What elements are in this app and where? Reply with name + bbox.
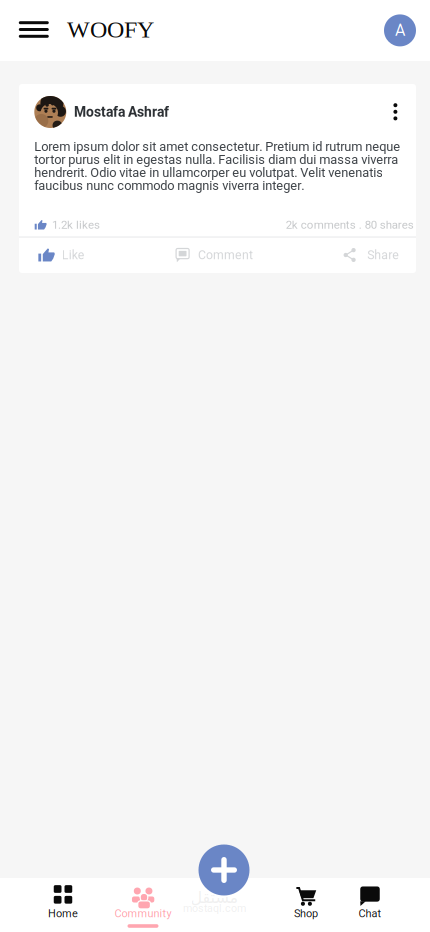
button[interactable]: Community [106,878,180,932]
button[interactable]: Chat [333,878,407,932]
staticText: mostaql.com [183,902,246,914]
staticText: 1.2k likes [52,218,100,231]
staticText: Share [367,248,399,262]
staticText: Chat [358,907,381,920]
button[interactable]: More options [381,96,409,128]
staticText: مستقل [190,888,238,907]
button[interactable]: Comment [155,237,275,273]
staticText: Home [48,907,78,920]
button[interactable]: Like [0,237,128,273]
staticText: WOOFY [67,16,154,43]
staticText: Shop [294,907,318,920]
button[interactable]: Create post [198,844,249,895]
button[interactable]: Shop [269,878,343,932]
staticText: Lorem ipsum dolor sit amet consectetur. … [34,140,400,192]
button[interactable]: Share [311,237,430,273]
button[interactable]: Menu [12,7,56,51]
button[interactable]: Account [384,14,416,46]
staticText: 2k comments . 80 shares [286,218,414,231]
staticText: Like [62,248,85,262]
staticText: Mostafa Ashraf [74,104,169,120]
button[interactable]: Home [26,878,100,932]
staticText: Comment [198,248,253,262]
staticText: A [395,21,405,40]
staticText: Community [114,907,171,920]
